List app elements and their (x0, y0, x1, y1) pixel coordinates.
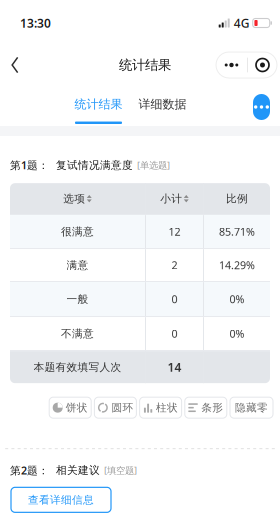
staticText: 不满意 (61, 327, 94, 340)
staticText: 第2题： (10, 463, 49, 477)
button[interactable]: 详细数据 (139, 97, 186, 124)
staticText: 比例 (226, 192, 248, 205)
staticText: 85.71% (219, 225, 255, 239)
staticText: 13:30 (20, 15, 51, 31)
staticText: 查看详细信息 (28, 493, 94, 506)
button[interactable]: 返回 (2, 49, 28, 81)
button[interactable]: 饼状 (49, 397, 91, 418)
staticText: 详细数据 (138, 97, 186, 112)
staticText: [单选题] (137, 159, 170, 171)
staticText: 圆环 (111, 401, 133, 414)
button[interactable]: 更多 (216, 52, 277, 78)
staticText: 相关建议 (56, 464, 100, 477)
staticText: 本题有效填写人次 (33, 361, 121, 374)
staticText: 满意 (66, 259, 88, 272)
button[interactable]: 隐藏零 (230, 397, 273, 418)
staticText: 隐藏零 (235, 401, 268, 414)
button[interactable]: 圆环 (94, 397, 136, 418)
staticText: 4G (234, 15, 250, 31)
staticText: 统计结果 (74, 97, 122, 112)
staticText: 14.29% (219, 258, 255, 272)
staticText: 小计 (160, 192, 182, 205)
staticText: 0% (229, 327, 244, 341)
staticText: 统计结果 (119, 57, 171, 73)
staticText: 柱状 (156, 401, 178, 414)
button[interactable]: 统计结果 (75, 97, 122, 124)
staticText: 复试情况满意度 (56, 158, 133, 172)
button[interactable]: 柱状 (140, 397, 182, 418)
staticText: 0 (171, 327, 177, 341)
staticText: [填空题] (104, 464, 137, 476)
staticText: 2 (171, 258, 177, 272)
staticText: 14 (167, 359, 181, 375)
staticText: 选项 (63, 192, 85, 205)
staticText: 一般 (66, 293, 88, 306)
staticText: 0 (171, 292, 177, 306)
staticText: 条形 (201, 401, 223, 414)
staticText: 饼状 (66, 401, 88, 414)
staticText: 12 (168, 225, 180, 239)
staticText: 0% (229, 292, 244, 306)
button[interactable]: 更多操作 (253, 94, 270, 120)
button[interactable]: 条形 (185, 397, 227, 418)
staticText: 第1题： (10, 158, 49, 172)
button[interactable]: 查看详细信息 (11, 487, 111, 512)
staticText: 很满意 (61, 225, 94, 238)
